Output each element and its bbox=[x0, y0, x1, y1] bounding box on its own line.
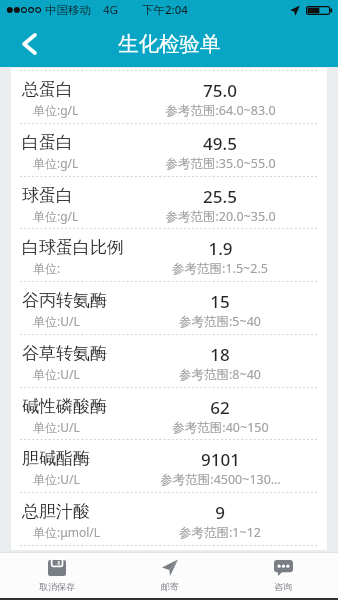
staticText: 62 bbox=[210, 396, 230, 419]
staticText: 胆碱酯酶 bbox=[22, 448, 90, 469]
button[interactable]: 白蛋白 bbox=[11, 123, 327, 176]
staticText: 1.9 bbox=[208, 237, 233, 260]
staticText: 单位:U/L bbox=[33, 419, 80, 435]
staticText: 球蛋白 bbox=[22, 185, 73, 206]
staticText: 参考范围:5~40 bbox=[179, 313, 261, 330]
button[interactable]: 谷草转氨酶 bbox=[11, 334, 327, 387]
staticText: 9101 bbox=[201, 448, 240, 471]
staticText: 白球蛋白比例 bbox=[22, 237, 124, 258]
staticText: 参考范围:1.5~2.5 bbox=[172, 260, 268, 277]
staticText: 18 bbox=[210, 343, 230, 366]
button[interactable]: Back bbox=[5, 20, 53, 67]
staticText: 总蛋白 bbox=[22, 79, 73, 100]
staticText: 咨询 bbox=[274, 581, 292, 592]
staticText: 邮寄 bbox=[161, 581, 179, 592]
staticText: 参考范围:64.0~83.0 bbox=[165, 102, 276, 119]
staticText: 参考范围:1~12 bbox=[179, 524, 261, 541]
staticText: 生化检验单 bbox=[118, 31, 221, 57]
button[interactable]: 总胆汁酸 bbox=[11, 492, 327, 545]
staticText: 参考范围:4500~130… bbox=[160, 471, 281, 488]
staticText: 单位:U/L bbox=[33, 313, 80, 329]
staticText: 单位: bbox=[33, 260, 61, 276]
staticText: 参考范围:35.0~55.0 bbox=[165, 155, 276, 172]
button[interactable]: 咨询 bbox=[225, 553, 338, 598]
staticText: 下午2:04 bbox=[142, 2, 188, 18]
staticText: 取消保存 bbox=[39, 581, 75, 592]
staticText: 15 bbox=[210, 290, 230, 313]
button[interactable]: 白球蛋白比例 bbox=[11, 228, 327, 281]
staticText: 49.5 bbox=[203, 132, 237, 155]
staticText: 单位:g/L bbox=[33, 155, 79, 171]
staticText: 中国移动 bbox=[45, 3, 91, 17]
button[interactable]: 球蛋白 bbox=[11, 176, 327, 229]
staticText: 参考范围:8~40 bbox=[179, 366, 261, 383]
staticText: 参考范围:40~150 bbox=[172, 419, 269, 436]
staticText: 9 bbox=[215, 501, 225, 524]
button[interactable]: 总蛋白 bbox=[11, 70, 327, 123]
button[interactable]: 取消保存 bbox=[0, 553, 112, 598]
staticText: 谷丙转氨酶 bbox=[22, 290, 107, 311]
staticText: 单位:U/L bbox=[33, 366, 80, 382]
staticText: 75.0 bbox=[203, 79, 237, 102]
staticText: 碱性磷酸酶 bbox=[22, 396, 107, 417]
staticText: 总胆汁酸 bbox=[22, 501, 90, 522]
staticText: 参考范围:20.0~35.0 bbox=[165, 208, 276, 225]
staticText: 4G bbox=[103, 2, 118, 18]
staticText: 单位:U/L bbox=[33, 471, 80, 487]
staticText: 白蛋白 bbox=[22, 132, 73, 153]
button[interactable]: 邮寄 bbox=[112, 553, 225, 598]
staticText: 25.5 bbox=[203, 185, 237, 208]
button[interactable]: 谷丙转氨酶 bbox=[11, 281, 327, 334]
staticText: 单位:μmol/L bbox=[33, 524, 101, 540]
staticText: 单位:g/L bbox=[33, 102, 79, 118]
staticText: 单位:g/L bbox=[33, 208, 79, 224]
staticText: 谷草转氨酶 bbox=[22, 343, 107, 364]
button[interactable]: 碱性磷酸酶 bbox=[11, 387, 327, 440]
button[interactable]: 胆碱酯酶 bbox=[11, 439, 327, 492]
